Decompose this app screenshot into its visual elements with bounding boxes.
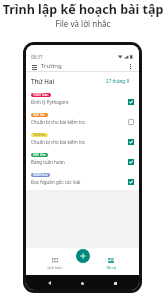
staticText: Thứ Hai bbox=[31, 77, 55, 85]
button[interactable]: More options bbox=[126, 62, 135, 71]
button[interactable]: 10:00 Toán bbox=[26, 89, 139, 109]
staticText: 8:00 Hóa bbox=[33, 153, 46, 157]
staticText: 08:37 bbox=[31, 54, 43, 60]
button[interactable]: 09:00 Sinh bbox=[26, 169, 139, 189]
staticText: Lịch biểu bbox=[47, 265, 63, 270]
button[interactable]: Recent apps bbox=[106, 278, 125, 288]
button[interactable]: Toggle task done bbox=[128, 159, 134, 165]
button[interactable]: Toggle task done bbox=[128, 179, 134, 185]
button[interactable]: Back bbox=[40, 278, 59, 288]
staticText: Đọc Nguồn gốc các loài bbox=[31, 179, 81, 185]
staticText: Chuẩn bị cho bài kiểm tra bbox=[31, 119, 85, 125]
button[interactable]: Toggle task done bbox=[128, 139, 134, 145]
staticText: 12:00 Sử bbox=[33, 133, 46, 137]
staticText: File và lời nhắc bbox=[0, 18, 166, 29]
button[interactable]: Lịch biểu bbox=[41, 258, 69, 270]
button[interactable]: Toggle task done bbox=[128, 119, 134, 125]
staticText: Tất cả bbox=[106, 265, 116, 270]
button[interactable]: Add task bbox=[76, 249, 90, 263]
staticText: Bảng tuần hoàn bbox=[31, 159, 65, 165]
staticText: Trường bbox=[41, 62, 62, 70]
staticText: 27 tháng 9 bbox=[106, 78, 130, 84]
button[interactable]: 8:00 Hóa bbox=[26, 149, 139, 169]
button[interactable]: 12:00 Sử bbox=[26, 129, 139, 149]
staticText: 9:00 Văn bbox=[33, 113, 46, 117]
staticText: 10:00 Toán bbox=[33, 93, 49, 97]
button[interactable]: 9:00 Văn bbox=[26, 109, 139, 129]
button[interactable]: Toggle task done bbox=[128, 99, 134, 105]
staticText: Định lý Pythagore bbox=[31, 99, 69, 105]
button[interactable]: Menu bbox=[30, 62, 39, 71]
staticText: Chuẩn bị cho bài kiểm tra bbox=[31, 139, 85, 145]
staticText: 09:00 Sinh bbox=[33, 173, 48, 177]
button[interactable]: Home bbox=[73, 278, 92, 288]
button[interactable]: Tất cả bbox=[97, 258, 125, 270]
staticText: Trình lập kế hoạch bài tập bbox=[0, 1, 166, 18]
